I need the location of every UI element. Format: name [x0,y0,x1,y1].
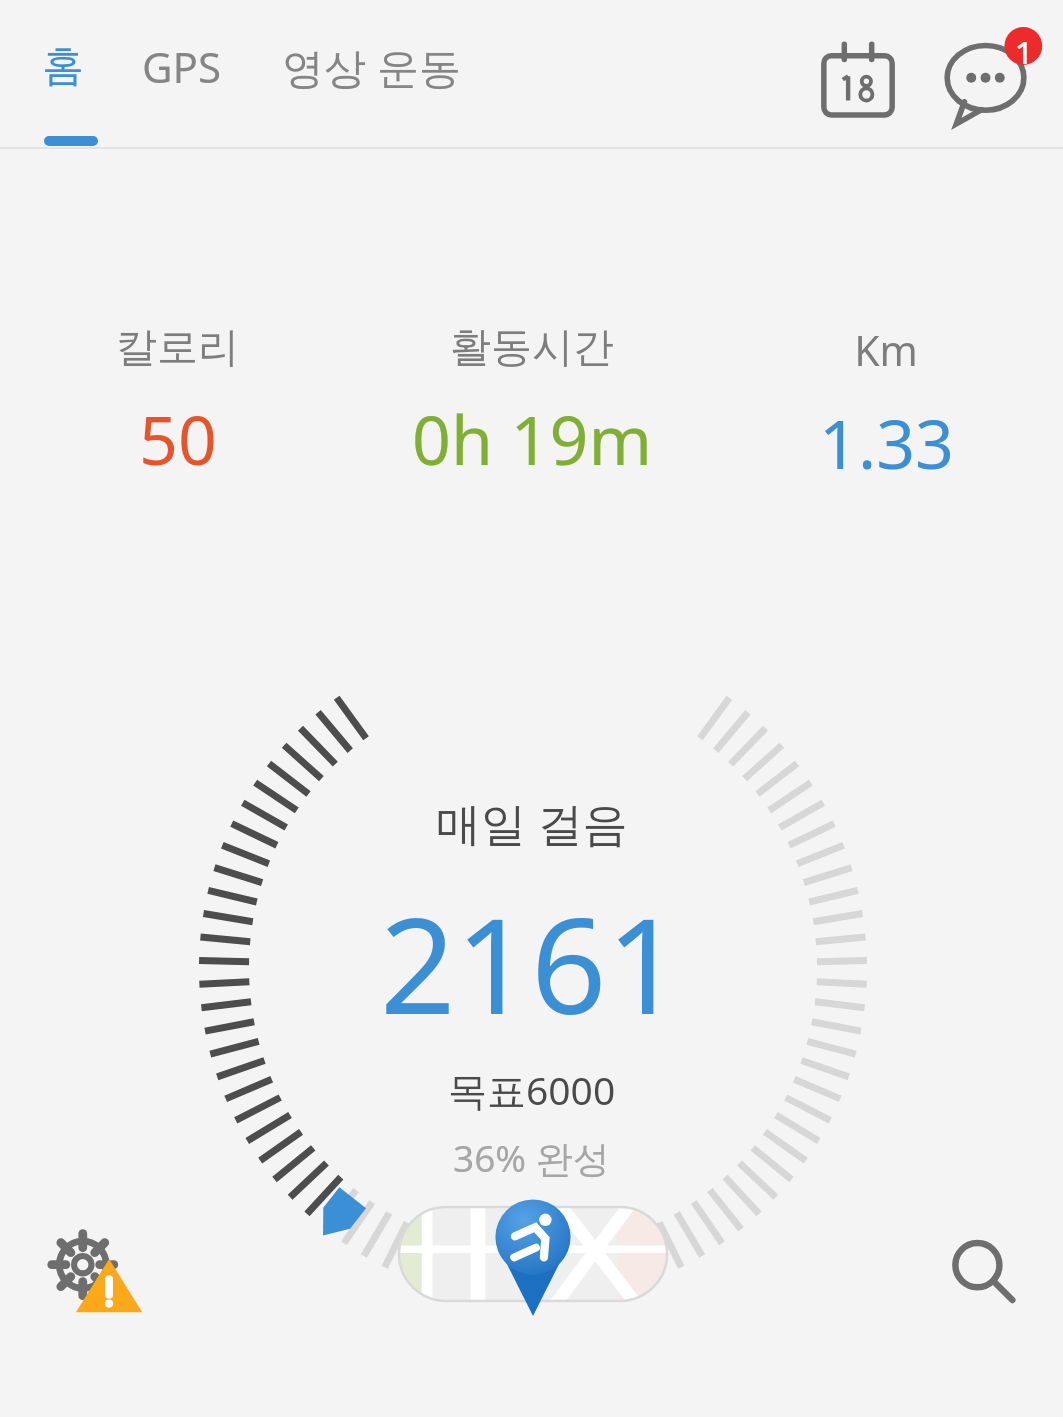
button[interactable]: 영상 운동 [276,26,467,107]
button[interactable]: GPS [136,26,228,107]
button[interactable]: 활동시간 [355,322,709,485]
staticText: 50 [139,392,217,485]
staticText: Km [854,322,918,378]
button[interactable]: Settings [38,1218,152,1332]
staticText: 0h 19m [412,392,652,485]
button[interactable]: Calendar [808,30,908,130]
staticText: 1 [1015,31,1033,69]
staticText: 2161 [380,873,683,1053]
staticText: 칼로리 [116,322,239,374]
staticText: 활동시간 [450,322,614,374]
button[interactable]: Messages [938,26,1046,134]
staticText: 영상 운동 [282,38,461,95]
staticText: 홈 [42,40,84,93]
staticText: 매일 걸음 [436,792,628,853]
staticText: 1.33 [819,396,954,489]
button[interactable]: 홈 [36,28,90,105]
button[interactable]: Km [709,322,1063,489]
button[interactable]: 칼로리 [0,322,355,485]
staticText: 36% 완성 [453,1132,610,1183]
button[interactable]: Map [399,1207,667,1301]
staticText: GPS [142,38,222,95]
button[interactable]: Search [928,1218,1042,1332]
staticText: 목표6000 [448,1063,616,1116]
